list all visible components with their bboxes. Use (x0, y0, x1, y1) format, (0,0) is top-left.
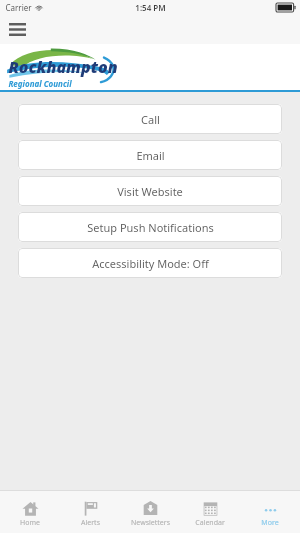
staticText: More (261, 518, 279, 528)
button[interactable]: Menu (4, 16, 30, 42)
button[interactable]: More (240, 497, 300, 528)
staticText: Calendar (195, 518, 225, 528)
button[interactable]: Call (18, 104, 282, 134)
staticText: Carrier (5, 2, 32, 13)
button[interactable]: Accessibility Mode: Off (18, 248, 282, 278)
button[interactable]: Email (18, 140, 282, 170)
staticText: Regional Council (8, 78, 72, 89)
staticText: Newsletters (131, 518, 170, 528)
staticText: Email (136, 148, 165, 163)
button[interactable]: Calendar (180, 497, 240, 528)
staticText: Home (20, 518, 40, 528)
button[interactable]: Alerts (60, 497, 120, 528)
staticText: Accessibility Mode: Off (92, 256, 209, 271)
staticText: Visit Website (117, 184, 183, 199)
staticText: Setup Push Notifications (87, 220, 214, 235)
staticText: Alerts (81, 518, 100, 528)
button[interactable]: Visit Website (18, 176, 282, 206)
button[interactable]: Setup Push Notifications (18, 212, 282, 242)
staticText: Rockhampton (8, 56, 118, 78)
button[interactable]: Home (0, 497, 60, 528)
staticText: Call (141, 112, 160, 127)
staticText: 1:54 PM (135, 2, 166, 13)
button[interactable]: Newsletters (120, 497, 180, 528)
